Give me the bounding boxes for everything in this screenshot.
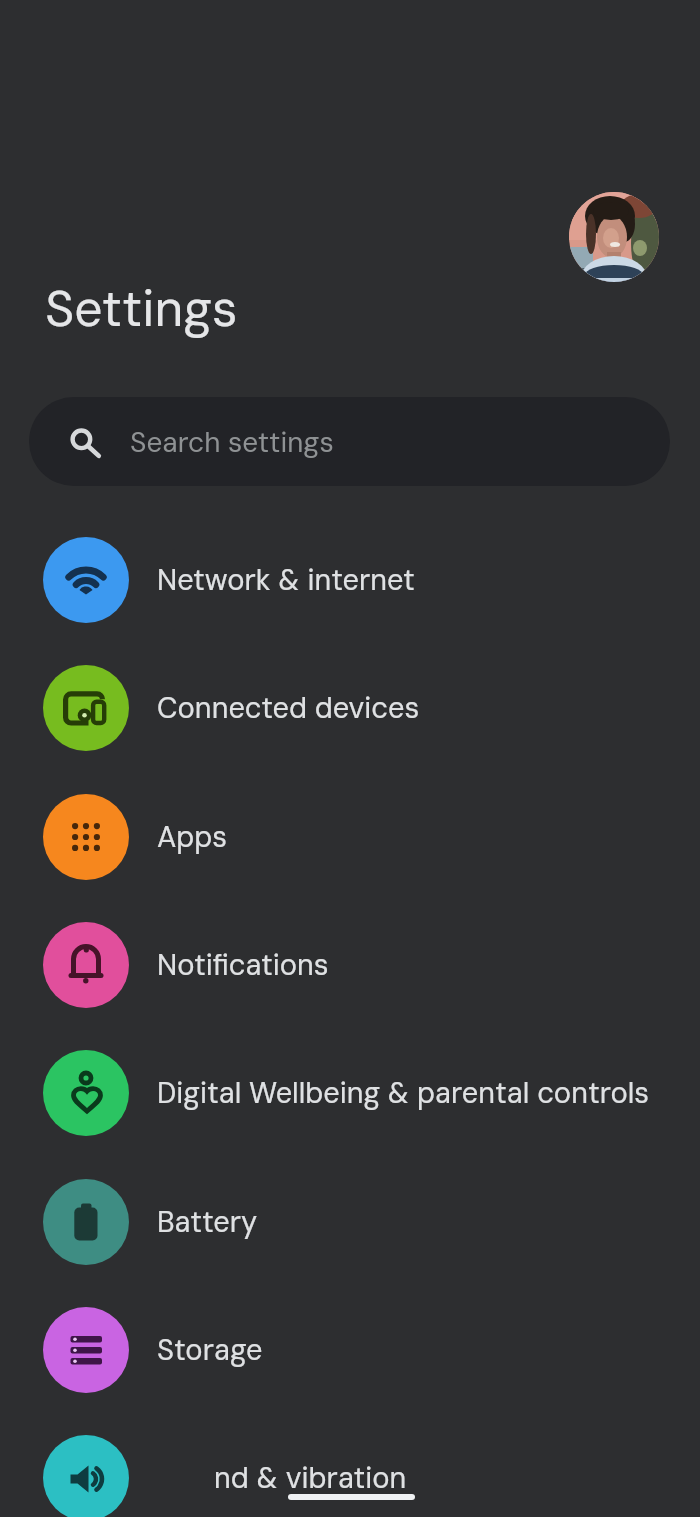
staticText: Apps <box>157 818 228 856</box>
button[interactable]: Apps <box>0 773 700 901</box>
button[interactable]: nd & vibration <box>0 1414 700 1517</box>
staticText: Settings <box>45 276 238 341</box>
staticText: Network & internet <box>157 561 415 599</box>
button[interactable]: Notifications <box>0 901 700 1029</box>
button[interactable]: Search settings <box>29 397 670 486</box>
staticText: Notifications <box>157 946 329 984</box>
button[interactable] <box>569 192 659 282</box>
button[interactable]: Battery <box>0 1158 700 1286</box>
button[interactable]: Storage <box>0 1286 700 1414</box>
staticText: Search settings <box>130 424 334 460</box>
button[interactable]: Digital Wellbeing & parental controls <box>0 1029 700 1157</box>
button[interactable]: Connected devices <box>0 644 700 772</box>
staticText: Storage <box>157 1331 263 1369</box>
staticText: Battery <box>157 1203 258 1241</box>
staticText: Connected devices <box>157 689 420 727</box>
button[interactable]: Network & internet <box>0 516 700 644</box>
staticText: nd & vibration <box>214 1459 407 1497</box>
staticText: Digital Wellbeing & parental controls <box>157 1074 650 1112</box>
